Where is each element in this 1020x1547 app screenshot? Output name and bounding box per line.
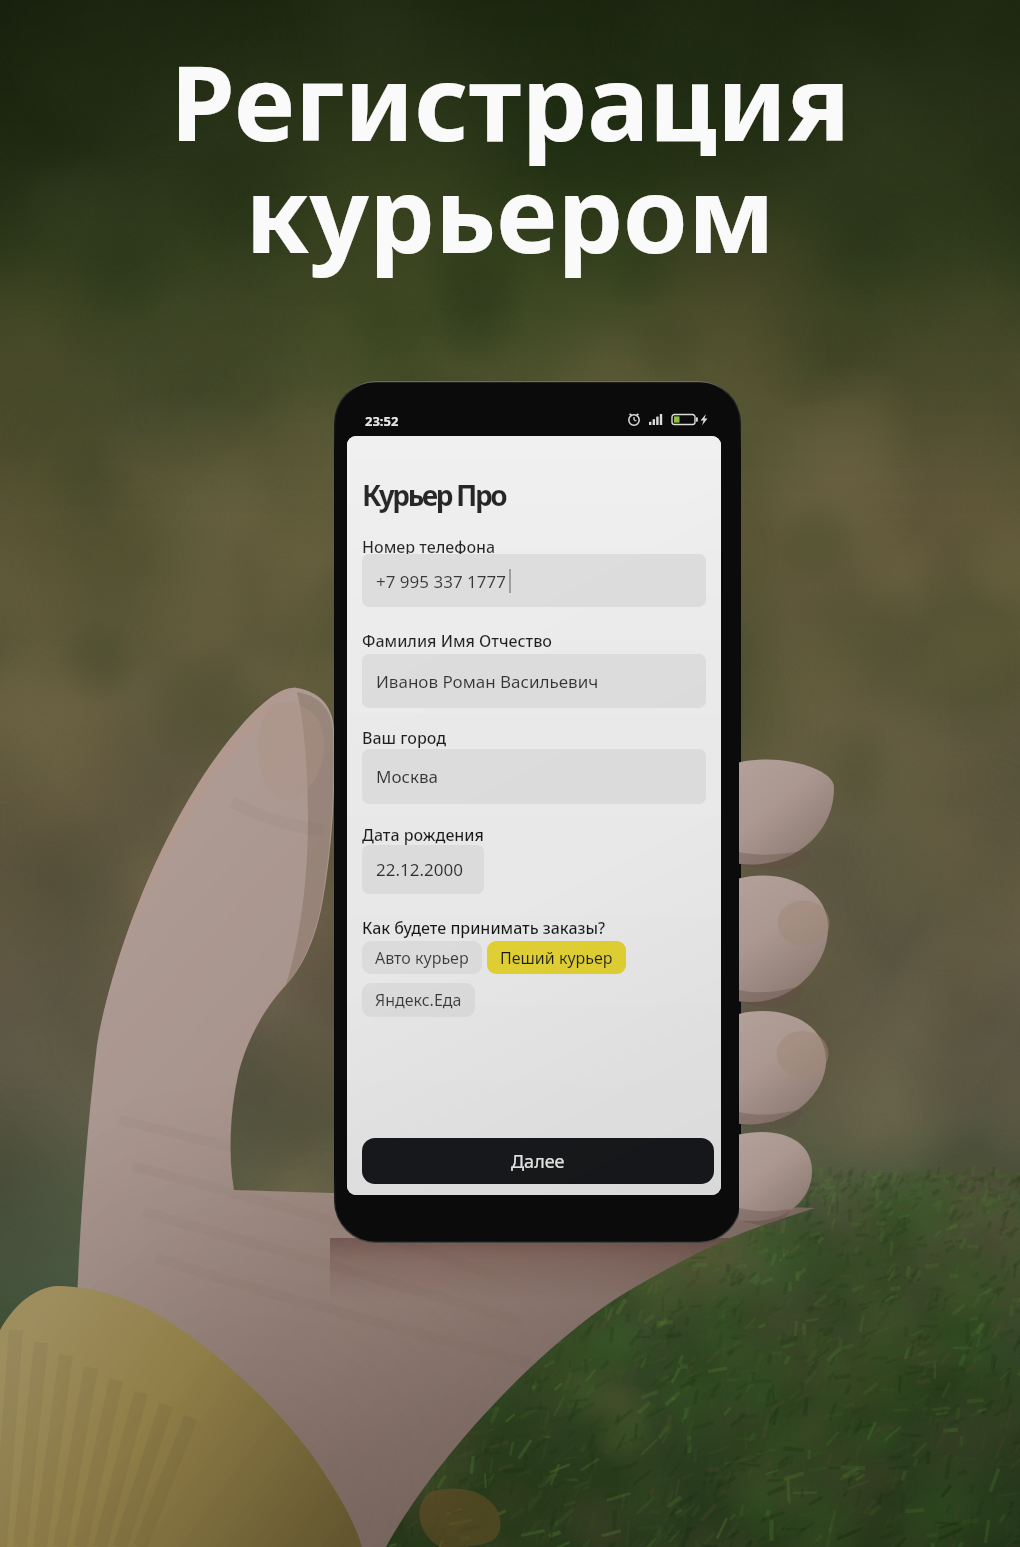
staticText: Номер телефона	[362, 536, 496, 558]
other: Status icons	[628, 412, 706, 427]
staticText: Иванов Роман Васильевич	[376, 670, 599, 693]
staticText: Курьер Про	[362, 476, 506, 514]
staticText: +7 995 337 1777	[376, 570, 506, 593]
staticText: Пеший курьер	[500, 947, 613, 969]
button[interactable]: 22.12.2000	[362, 845, 484, 894]
button[interactable]: Авто курьер	[362, 941, 482, 974]
button[interactable]: Иванов Роман Васильевич	[362, 654, 706, 708]
staticText: Яндекс.Еда	[375, 989, 462, 1011]
staticText: Дата рождения	[362, 824, 484, 846]
button[interactable]: Яндекс.Еда	[362, 983, 475, 1017]
staticText: Регистрация курьером	[170, 30, 850, 283]
button[interactable]: Москва	[362, 749, 706, 804]
staticText: Ваш город	[362, 727, 447, 749]
staticText: 23:52	[365, 412, 399, 430]
staticText: Москва	[376, 765, 438, 788]
staticText: 22.12.2000	[376, 858, 463, 881]
button[interactable]: Далее	[362, 1138, 714, 1184]
staticText: Далее	[511, 1149, 565, 1174]
staticText: Фамилия Имя Отчество	[362, 630, 553, 652]
button[interactable]: +7 995 337 1777	[362, 554, 706, 607]
button[interactable]: Пеший курьер	[487, 941, 626, 974]
staticText: Как будете принимать заказы?	[362, 917, 606, 939]
staticText: Авто курьер	[375, 947, 469, 969]
